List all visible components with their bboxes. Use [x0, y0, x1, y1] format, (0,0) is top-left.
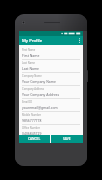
staticText: Company Address — [22, 87, 45, 91]
button[interactable]: Company Name — [19, 73, 83, 86]
button[interactable]: Company Address — [19, 86, 83, 99]
staticText: 9856777778 — [22, 118, 42, 123]
button[interactable]: Mobile Number — [19, 112, 83, 125]
button[interactable]: Last Name — [19, 60, 83, 73]
button[interactable]: CANCEL — [19, 135, 50, 143]
staticText: youremail@gmail.com — [22, 105, 58, 110]
staticText: SAVE — [63, 137, 71, 141]
staticText: Your Company Name — [22, 79, 56, 84]
button[interactable]: First Name — [19, 47, 83, 60]
staticText: Mobile Number — [22, 113, 42, 117]
button[interactable]: SAVE — [51, 135, 83, 143]
staticText: Office Number — [22, 126, 40, 130]
staticText: My Profile — [22, 38, 43, 44]
staticText: Last Name — [22, 61, 35, 65]
button[interactable]: Email ID — [19, 99, 83, 112]
staticText: 0406845729 — [22, 131, 42, 135]
staticText: Email ID — [22, 100, 33, 104]
staticText: CANCEL — [28, 137, 41, 141]
button[interactable]: More options — [76, 36, 83, 45]
button[interactable]: Office Number — [19, 125, 83, 135]
staticText: First Name — [22, 53, 40, 58]
staticText: Last Name — [22, 66, 39, 71]
staticText: First Name — [22, 48, 36, 52]
staticText: Your Company Address — [22, 92, 60, 97]
staticText: Company Name — [22, 74, 42, 78]
